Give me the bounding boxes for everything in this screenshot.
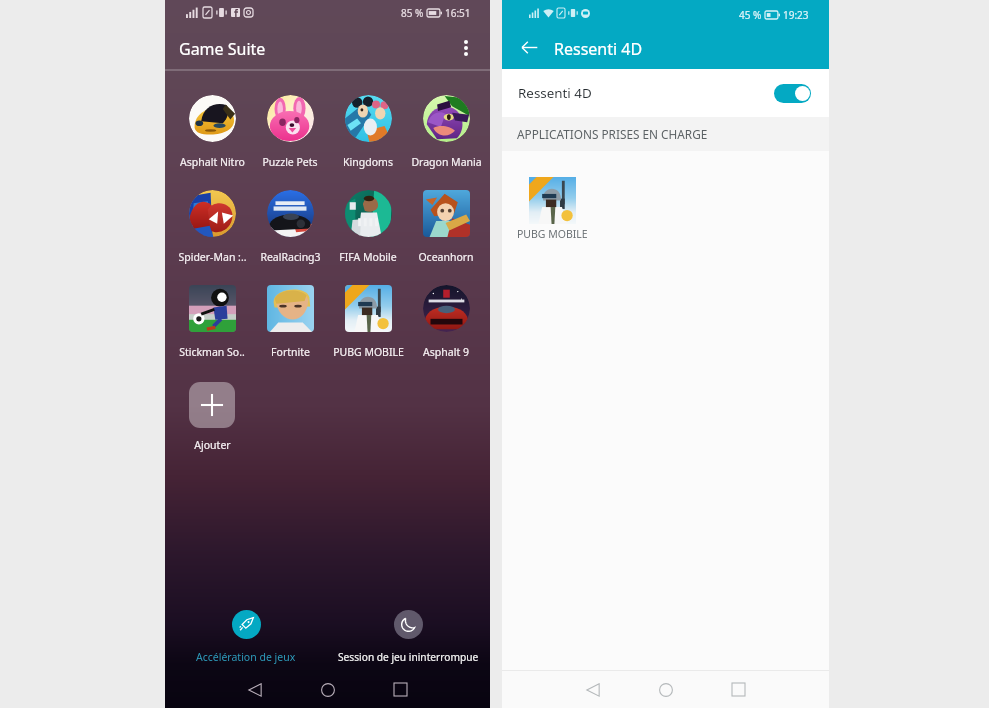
button[interactable]: Stickman So.. <box>173 285 251 359</box>
button[interactable]: Fortnite <box>251 285 329 359</box>
staticText: Ajouter <box>194 438 231 452</box>
staticText: Kingdoms <box>343 155 393 169</box>
button[interactable]: Spider-Man :.. <box>173 190 251 264</box>
button[interactable]: Back <box>507 25 551 69</box>
button[interactable]: Oceanhorn <box>407 190 485 264</box>
staticText: RealRacing3 <box>260 250 321 264</box>
staticText: PUBG MOBILE <box>333 345 404 359</box>
button[interactable]: Back <box>219 671 291 708</box>
button[interactable]: Recents <box>702 671 774 708</box>
button[interactable]: Home <box>291 671 364 708</box>
staticText: Dragon Mania <box>411 155 482 169</box>
button[interactable]: Dragon Mania <box>407 95 485 169</box>
staticText: Asphalt Nitro <box>180 155 245 169</box>
button[interactable]: Asphalt 9 <box>407 285 485 359</box>
button[interactable]: Ressenti 4D <box>502 69 829 117</box>
staticText: Ressenti 4D <box>554 38 643 60</box>
button[interactable]: PUBG MOBILE <box>329 285 407 359</box>
staticText: FIFA Mobile <box>339 250 397 264</box>
button[interactable]: Accélération de jeux <box>165 610 327 664</box>
staticText: Fortnite <box>271 345 310 359</box>
button[interactable]: Home <box>629 671 702 708</box>
staticText: 16:51 <box>445 6 471 20</box>
staticText: Accélération de jeux <box>196 650 296 664</box>
staticText: 45 % <box>739 8 762 22</box>
staticText: Puzzle Pets <box>262 155 318 169</box>
staticText: 19:23 <box>783 8 809 22</box>
staticText: Ressenti 4D <box>518 84 592 102</box>
button[interactable]: Ajouter <box>173 382 251 452</box>
staticText: Game Suite <box>179 38 266 60</box>
button[interactable]: Back <box>557 671 629 708</box>
staticText: Session de jeu ininterrompue <box>338 650 479 664</box>
button[interactable]: Asphalt Nitro <box>173 95 251 169</box>
staticText: Stickman So.. <box>179 345 245 359</box>
button[interactable]: More options <box>448 30 484 66</box>
staticText: PUBG MOBILE <box>517 227 588 241</box>
button[interactable]: RealRacing3 <box>251 190 329 264</box>
staticText: 85 % <box>401 6 424 20</box>
button[interactable]: Kingdoms <box>329 95 407 169</box>
staticText: Asphalt 9 <box>423 345 469 359</box>
button[interactable]: FIFA Mobile <box>329 190 407 264</box>
button[interactable]: Session de jeu ininterrompue <box>327 610 490 664</box>
staticText: Oceanhorn <box>418 250 474 264</box>
staticText: Spider-Man :.. <box>178 250 247 264</box>
staticText: APPLICATIONS PRISES EN CHARGE <box>517 126 708 142</box>
button[interactable]: PUBG MOBILE <box>512 177 592 241</box>
button[interactable]: Puzzle Pets <box>251 95 329 169</box>
button[interactable]: Recents <box>364 671 436 708</box>
